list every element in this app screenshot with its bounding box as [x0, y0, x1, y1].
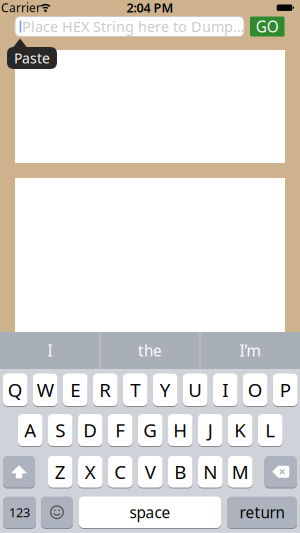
button[interactable]: Q	[3, 373, 28, 406]
button[interactable]: return	[227, 496, 297, 528]
button[interactable]: M	[228, 456, 253, 487]
staticText: O	[248, 377, 263, 402]
staticText: space	[129, 502, 170, 523]
button[interactable]: Z	[48, 456, 73, 487]
button[interactable]: space	[79, 496, 221, 528]
staticText: M	[232, 459, 249, 484]
button[interactable]: P	[273, 373, 298, 406]
staticText: I	[47, 340, 52, 361]
button[interactable]: 123	[3, 496, 36, 528]
button[interactable]: S	[48, 414, 73, 446]
staticText: Y	[160, 377, 171, 402]
button[interactable]: V	[138, 456, 163, 487]
staticText: W	[37, 377, 54, 402]
button[interactable]: F	[108, 414, 133, 446]
button[interactable]: N	[198, 456, 223, 487]
staticText: T	[130, 377, 140, 402]
button[interactable]: D	[78, 414, 103, 446]
staticText: GO	[256, 16, 279, 37]
button[interactable]: L	[258, 414, 283, 446]
staticText: V	[145, 459, 156, 484]
button[interactable]: GO	[250, 16, 284, 37]
staticText: F	[115, 417, 125, 443]
staticText: Z	[55, 459, 66, 484]
staticText: X	[85, 459, 96, 484]
button[interactable]: E	[63, 373, 88, 406]
staticText: B	[174, 459, 186, 484]
button[interactable]: C	[108, 456, 133, 487]
staticText: P	[280, 377, 291, 402]
staticText: I	[222, 377, 228, 402]
staticText: C	[114, 459, 126, 484]
button[interactable]: Delete	[264, 456, 297, 487]
button[interactable]: the	[100, 332, 199, 369]
staticText: Place HEX String here to Dump...	[22, 17, 244, 36]
staticText: L	[265, 417, 275, 443]
staticText: K	[234, 417, 246, 443]
button[interactable]: HEX string input	[15, 16, 244, 36]
staticText: E	[70, 377, 80, 402]
staticText: G	[143, 417, 157, 443]
staticText: D	[83, 417, 97, 443]
staticText: 2:04 PM	[126, 0, 173, 16]
button[interactable]: K	[228, 414, 253, 446]
button[interactable]: I’m	[200, 332, 299, 369]
staticText: I’m	[239, 340, 260, 361]
button[interactable]: Paste	[7, 38, 57, 69]
staticText: U	[188, 377, 202, 402]
staticText: Paste	[14, 48, 50, 68]
button[interactable]: Y	[153, 373, 178, 406]
button[interactable]: J	[198, 414, 223, 446]
staticText: H	[173, 417, 187, 443]
button[interactable]: Shift	[3, 456, 35, 487]
button[interactable]: G	[138, 414, 163, 446]
button[interactable]: T	[123, 373, 148, 406]
button[interactable]: Emoji	[41, 496, 73, 528]
button[interactable]: O	[243, 373, 268, 406]
staticText: the	[138, 340, 162, 361]
staticText: J	[208, 417, 213, 443]
button[interactable]: B	[168, 456, 193, 487]
staticText: 123	[9, 504, 30, 521]
staticText: Q	[8, 377, 23, 402]
staticText: N	[203, 459, 217, 484]
staticText: Carrier	[1, 0, 41, 16]
staticText: S	[55, 417, 65, 443]
button[interactable]: R	[93, 373, 118, 406]
button[interactable]: I	[0, 332, 99, 369]
staticText: A	[24, 417, 36, 443]
staticText: return	[239, 502, 284, 523]
button[interactable]: H	[168, 414, 193, 446]
button[interactable]: X	[78, 456, 103, 487]
button[interactable]: U	[183, 373, 208, 406]
button[interactable]: A	[18, 414, 43, 446]
button[interactable]: W	[33, 373, 58, 406]
button[interactable]: I	[213, 373, 238, 406]
staticText: R	[99, 377, 111, 402]
